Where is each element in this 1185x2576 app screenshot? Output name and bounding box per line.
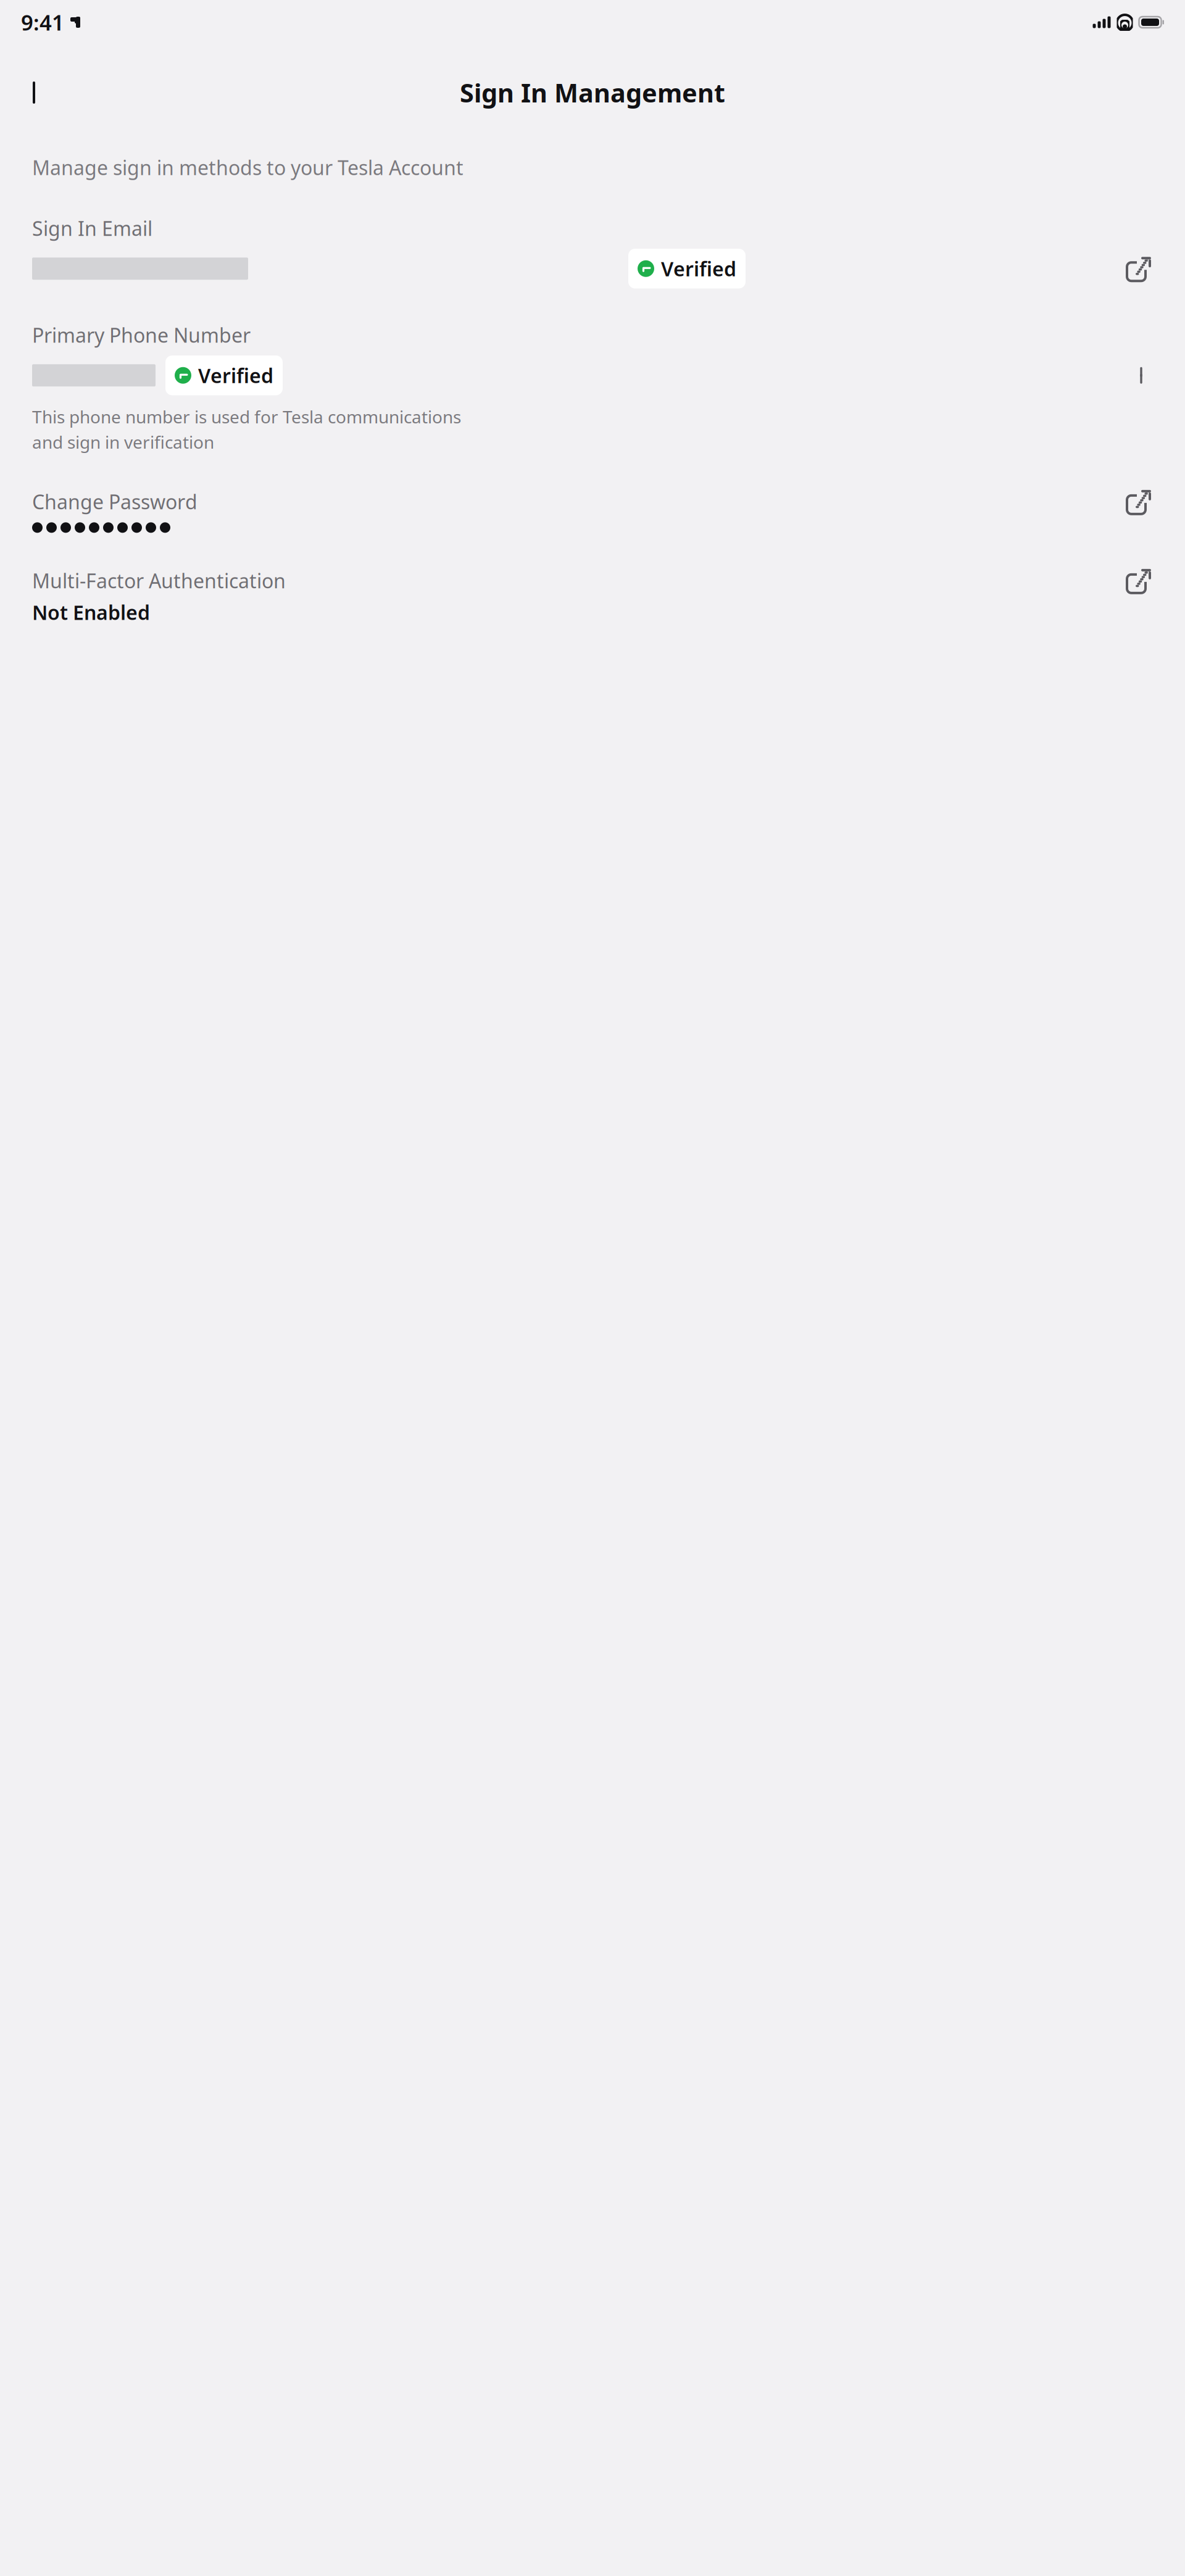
staticText: and sign in verification — [32, 431, 214, 454]
button[interactable]: Change Password — [0, 486, 1185, 536]
staticText: Multi-Factor Authentication — [32, 568, 286, 594]
staticText: Not Enabled — [32, 599, 150, 625]
staticText: This phone number is used for Tesla comm… — [32, 405, 461, 428]
button[interactable]: Back — [20, 76, 53, 109]
staticText: Verified — [198, 362, 273, 388]
staticText: Sign In Email — [32, 215, 152, 241]
staticText: Primary Phone Number — [32, 322, 251, 348]
staticText: Manage sign in methods to your Tesla Acc… — [32, 154, 464, 181]
staticText: Verified — [661, 256, 736, 282]
staticText: Change Password — [32, 489, 197, 515]
button[interactable]: Primary Phone Number — [0, 319, 1185, 456]
staticText: 9:41 — [21, 8, 64, 36]
staticText: Sign In Management — [460, 76, 725, 110]
button[interactable]: Sign In Email — [0, 213, 1185, 291]
button[interactable]: Multi-Factor Authentication — [0, 565, 1185, 628]
